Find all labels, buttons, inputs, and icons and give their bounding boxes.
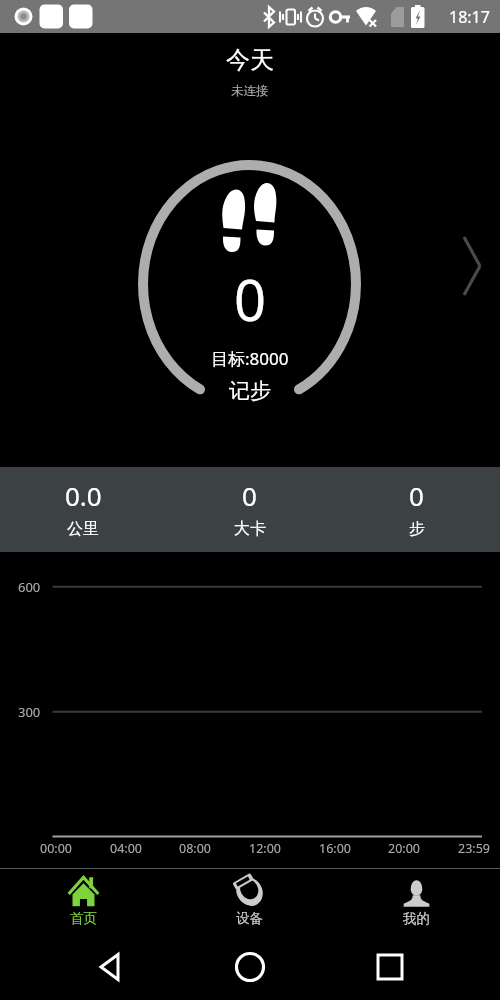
staticText: 今天 — [226, 45, 274, 75]
staticText: 300 — [18, 703, 41, 721]
staticText: 600 — [18, 578, 41, 596]
button[interactable]: 我的 — [333, 869, 500, 938]
staticText: 首页 — [70, 910, 97, 927]
staticText: 0.0 — [65, 478, 102, 513]
staticText: 设备 — [236, 910, 263, 927]
staticText: 20:00 — [388, 840, 420, 857]
staticText: 大卡 — [234, 519, 266, 539]
button[interactable]: 0 — [166, 467, 333, 552]
staticText: 0 — [409, 478, 424, 513]
staticText: 步 — [409, 519, 425, 539]
staticText: 公里 — [67, 519, 99, 539]
button[interactable]: 首页 — [0, 869, 166, 938]
staticText: 0 — [234, 261, 267, 337]
staticText: 04:00 — [110, 840, 142, 857]
staticText: 23:59 — [458, 840, 490, 857]
staticText: 我的 — [403, 910, 430, 927]
staticText: 0 — [242, 478, 257, 513]
button[interactable]: 设备 — [166, 869, 333, 938]
staticText: 12:00 — [249, 840, 281, 857]
staticText: 08:00 — [179, 840, 211, 857]
staticText: 未连接 — [231, 83, 269, 99]
button[interactable]: 0.0 — [0, 467, 166, 552]
staticText: 00:00 — [40, 840, 72, 857]
button[interactable]: 0 — [333, 467, 500, 552]
staticText: 16:00 — [319, 840, 351, 857]
staticText: 18:17 — [449, 6, 490, 28]
staticText: 记步 — [229, 378, 271, 404]
staticText: 目标:8000 — [211, 347, 289, 370]
